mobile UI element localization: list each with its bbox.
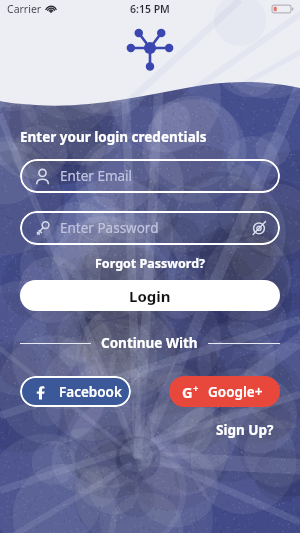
staticText: G bbox=[182, 382, 193, 402]
button[interactable]: Login bbox=[20, 280, 280, 311]
other: Show password bbox=[250, 219, 268, 237]
staticText: Forgot Password? bbox=[95, 255, 206, 272]
staticText: Enter Email bbox=[60, 167, 268, 185]
staticText: Google+ bbox=[208, 383, 263, 401]
staticText: + bbox=[193, 382, 199, 395]
button[interactable]: Sign Up? bbox=[210, 419, 280, 441]
button[interactable]: Enter Password bbox=[20, 211, 280, 245]
button[interactable]: Facebook bbox=[20, 376, 131, 407]
staticText: Facebook bbox=[59, 383, 122, 401]
staticText: Enter Password bbox=[60, 219, 250, 237]
staticText: Carrier bbox=[7, 2, 42, 16]
button[interactable]: G bbox=[169, 376, 280, 407]
staticText: 6:15 PM bbox=[130, 2, 170, 16]
button[interactable]: Forgot Password? bbox=[89, 253, 212, 274]
staticText: Enter your login credentials bbox=[20, 128, 207, 146]
staticText: Sign Up? bbox=[216, 421, 274, 439]
staticText: Continue With bbox=[101, 334, 198, 352]
button[interactable]: Enter Email bbox=[20, 159, 280, 193]
staticText: Login bbox=[129, 286, 171, 306]
